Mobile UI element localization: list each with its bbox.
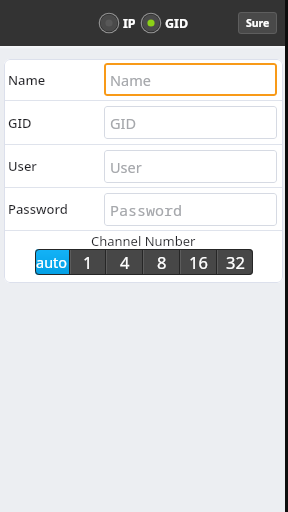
staticText: 16 — [189, 251, 208, 273]
staticText: Sure — [246, 16, 270, 30]
staticText: Password — [8, 200, 68, 218]
button[interactable]: 1 — [71, 249, 105, 275]
staticText: Name — [110, 70, 151, 90]
button[interactable]: auto — [35, 249, 69, 275]
staticText: Channel Number — [91, 232, 196, 250]
button[interactable]: Password — [4, 188, 283, 230]
button[interactable]: Name — [4, 59, 283, 100]
staticText: 4 — [120, 251, 130, 273]
button[interactable]: IP — [98, 12, 136, 34]
button[interactable]: GID — [140, 12, 189, 34]
staticText: GID — [165, 15, 189, 32]
button[interactable]: Sure — [238, 12, 277, 34]
button[interactable]: 8 — [144, 249, 179, 275]
staticText: auto — [36, 252, 68, 272]
button[interactable]: 32 — [218, 249, 253, 275]
staticText: 1 — [83, 251, 93, 273]
staticText: Name — [8, 71, 46, 89]
button[interactable]: GID — [4, 101, 283, 144]
button[interactable]: 4 — [107, 249, 142, 275]
staticText: 32 — [226, 251, 245, 273]
staticText: GID — [8, 114, 32, 132]
button[interactable]: 16 — [181, 249, 216, 275]
staticText: User — [8, 157, 37, 175]
staticText: Password — [110, 200, 183, 220]
staticText: User — [110, 157, 142, 177]
staticText: GID — [110, 113, 137, 133]
button[interactable]: User — [4, 145, 283, 187]
staticText: 8 — [157, 251, 167, 273]
staticText: IP — [123, 15, 136, 32]
